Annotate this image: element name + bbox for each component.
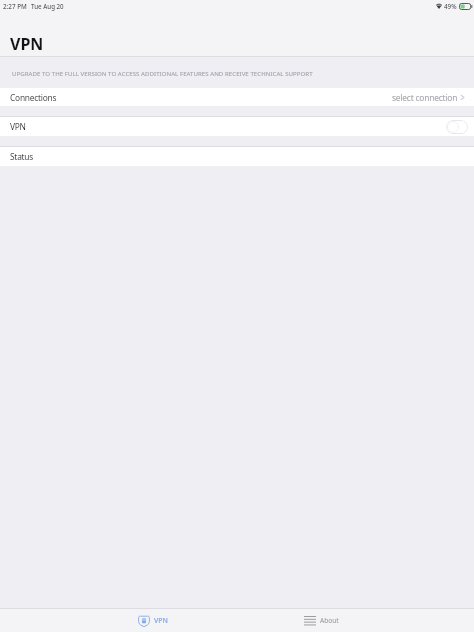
staticText: 2:27 PM (3, 2, 27, 11)
staticText: Connections (10, 92, 57, 103)
staticText: Status (10, 151, 34, 162)
button[interactable]: UPGRADE TO THE FULL VERSION TO ACCESS AD… (0, 57, 474, 88)
staticText: About (320, 616, 339, 625)
button[interactable]: Status (0, 147, 474, 166)
staticText: UPGRADE TO THE FULL VERSION TO ACCESS AD… (12, 69, 313, 77)
button[interactable]: VPN (0, 117, 474, 136)
button[interactable]: About (237, 609, 474, 632)
staticText: select connection (392, 92, 458, 103)
staticText: Tue Aug 20 (31, 2, 64, 10)
button[interactable]: Connections (0, 88, 474, 106)
button[interactable]: VPN (0, 609, 237, 632)
staticText: VPN (10, 33, 44, 55)
staticText: 49% (444, 2, 457, 11)
staticText: VPN (10, 121, 26, 132)
staticText: VPN (154, 616, 169, 626)
button[interactable]: VPN toggle (446, 120, 468, 134)
